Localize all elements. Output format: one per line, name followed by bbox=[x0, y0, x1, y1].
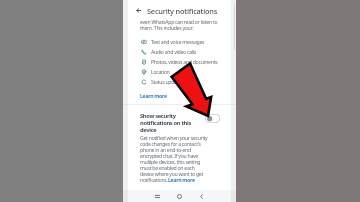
staticText: Get notified when your security code cha… bbox=[140, 134, 208, 184]
staticText: Security notifications bbox=[147, 6, 218, 16]
button[interactable]: Home bbox=[174, 191, 185, 202]
staticText: Status updates bbox=[151, 78, 184, 85]
button[interactable]: Recent apps bbox=[152, 191, 163, 202]
staticText: Photos, videos and documents bbox=[151, 58, 218, 65]
staticText: even WhatsApp can read or listen to them… bbox=[140, 18, 218, 31]
button[interactable]: Show security notifications toggle bbox=[205, 114, 220, 123]
button[interactable]: Show security notifications on this devi… bbox=[140, 112, 202, 134]
staticText: Text and voice messages bbox=[151, 38, 205, 45]
staticText: Location bbox=[151, 68, 170, 75]
button[interactable]: Learn more bbox=[168, 176, 195, 183]
staticText: Audio and video calls bbox=[151, 48, 197, 55]
button[interactable]: Back bbox=[133, 5, 144, 16]
button[interactable]: Back bbox=[123, 0, 236, 19]
button[interactable]: Learn more bbox=[140, 92, 167, 99]
button[interactable]: Back bbox=[196, 191, 207, 202]
